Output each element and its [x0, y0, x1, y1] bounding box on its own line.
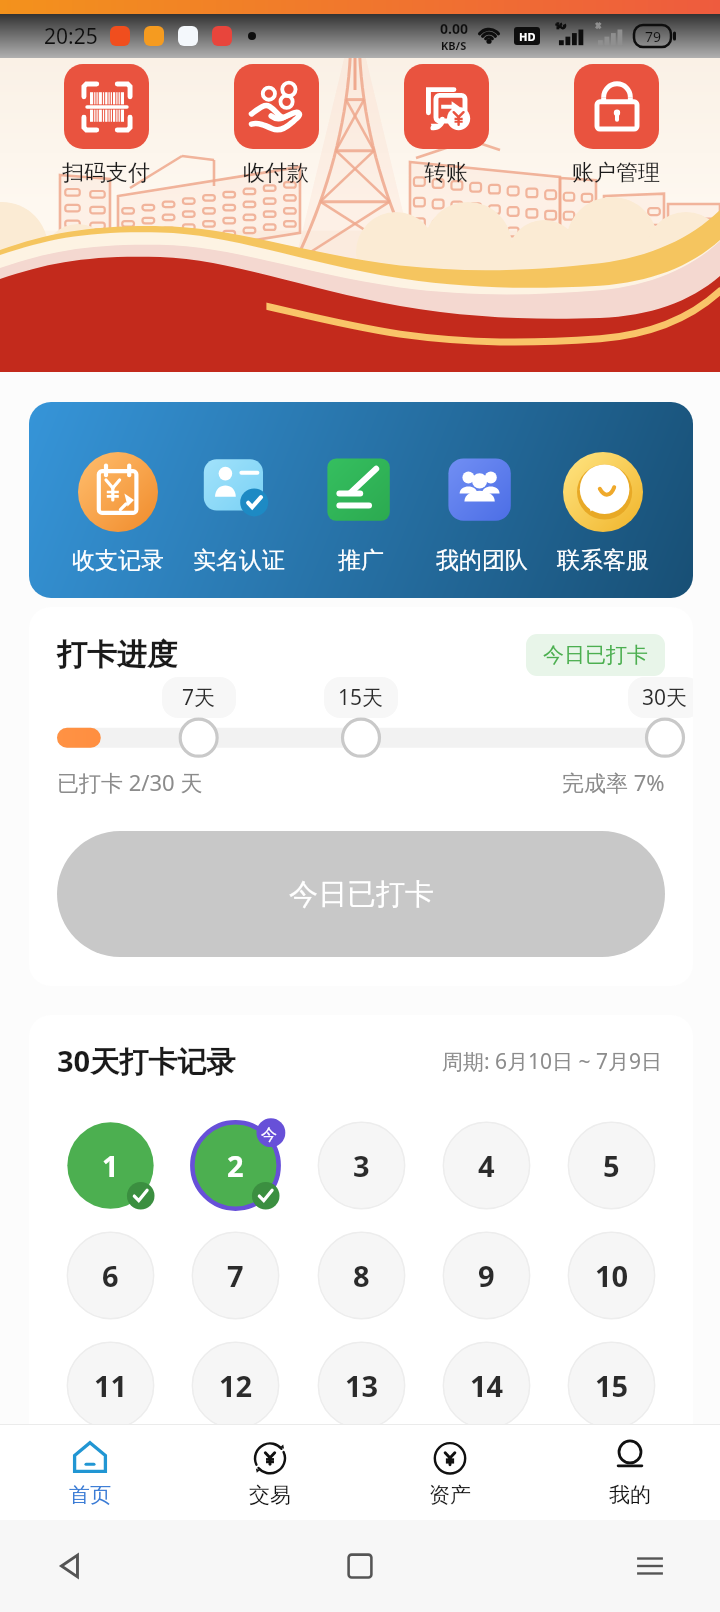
button[interactable]: 7 [191, 1231, 280, 1320]
button[interactable]: 1 [66, 1121, 155, 1210]
staticText: 7 [227, 1256, 244, 1295]
staticText: 13 [345, 1366, 379, 1405]
staticText: 已打卡 2/30 天 [57, 767, 203, 797]
button[interactable]: 14 [442, 1341, 531, 1430]
button[interactable]: 推广 [312, 452, 410, 575]
button[interactable]: 15 [567, 1341, 656, 1430]
staticText: 12 [219, 1366, 253, 1405]
button[interactable]: 4 [442, 1121, 531, 1210]
staticText: 打卡进度 [57, 636, 177, 674]
button[interactable]: 13 [317, 1341, 406, 1430]
button[interactable]: 5 [567, 1121, 656, 1210]
button[interactable]: 今日已打卡 [526, 634, 665, 676]
staticText: 30天 [642, 683, 688, 712]
staticText: HD [519, 29, 536, 44]
staticText: 14 [470, 1366, 504, 1405]
staticText: 11 [94, 1366, 128, 1405]
staticText: 20:25 [44, 22, 98, 51]
staticText: 0.00 [440, 19, 468, 38]
button[interactable]: 2 [191, 1121, 280, 1210]
staticText: 5 [603, 1146, 620, 1185]
staticText: 8 [353, 1256, 370, 1295]
button[interactable]: 交易 [180, 1425, 360, 1520]
staticText: 推广 [338, 546, 384, 575]
button[interactable]: 11 [66, 1341, 155, 1430]
button[interactable]: Recents [620, 1536, 680, 1596]
button[interactable]: 12 [191, 1341, 280, 1430]
button[interactable]: 3 [317, 1121, 406, 1210]
staticText: 今日已打卡 [289, 876, 434, 913]
staticText: 3 [353, 1146, 370, 1185]
staticText: 1 [102, 1146, 119, 1185]
button[interactable]: 转账 [366, 64, 526, 187]
staticText: 2 [227, 1146, 244, 1185]
staticText: 4 [478, 1146, 495, 1185]
staticText: 转账 [424, 159, 468, 187]
button[interactable]: 首页 [0, 1425, 180, 1520]
staticText: 收支记录 [72, 546, 164, 575]
button[interactable]: 账户管理 [536, 64, 696, 187]
staticText: 10 [595, 1256, 629, 1295]
button[interactable]: Back [40, 1536, 100, 1596]
button[interactable]: 10 [567, 1231, 656, 1320]
staticText: 联系客服 [557, 546, 649, 575]
staticText: 今日已打卡 [543, 642, 648, 668]
staticText: 交易 [249, 1482, 291, 1508]
staticText: 今 [261, 1125, 277, 1145]
button[interactable]: 今日已打卡 [57, 831, 665, 957]
button[interactable]: 8 [317, 1231, 406, 1320]
staticText: 完成率 7% [562, 767, 665, 797]
staticText: 15 [595, 1366, 629, 1405]
staticText: 资产 [429, 1482, 471, 1508]
button[interactable]: 我的团队 [433, 452, 531, 575]
button[interactable]: 扫码支付 [26, 64, 186, 187]
staticText: 15天 [338, 683, 384, 712]
button[interactable]: 9 [442, 1231, 531, 1320]
button[interactable]: 收付款 [196, 64, 356, 187]
staticText: 9 [478, 1256, 495, 1295]
staticText: 实名认证 [193, 546, 285, 575]
button[interactable]: 我的 [540, 1425, 720, 1520]
button[interactable]: Home [330, 1536, 390, 1596]
staticText: 账户管理 [572, 159, 660, 187]
staticText: 我的 [609, 1482, 651, 1508]
staticText: 79 [645, 27, 662, 46]
button[interactable]: 6 [66, 1231, 155, 1320]
staticText: 30天打卡记录 [57, 1041, 236, 1081]
button[interactable]: 实名认证 [190, 452, 288, 575]
staticText: 我的团队 [436, 546, 528, 575]
staticText: 首页 [69, 1482, 111, 1508]
staticText: 收付款 [243, 159, 309, 187]
button[interactable]: 收支记录 [69, 452, 167, 575]
staticText: 6 [102, 1256, 119, 1295]
button[interactable]: 资产 [360, 1425, 540, 1520]
button[interactable]: 联系客服 [554, 452, 652, 575]
staticText: 周期: 6月10日 ~ 7月9日 [442, 1047, 663, 1076]
staticText: KB/S [441, 38, 467, 53]
staticText: 7天 [182, 683, 216, 712]
staticText: 扫码支付 [62, 159, 150, 187]
